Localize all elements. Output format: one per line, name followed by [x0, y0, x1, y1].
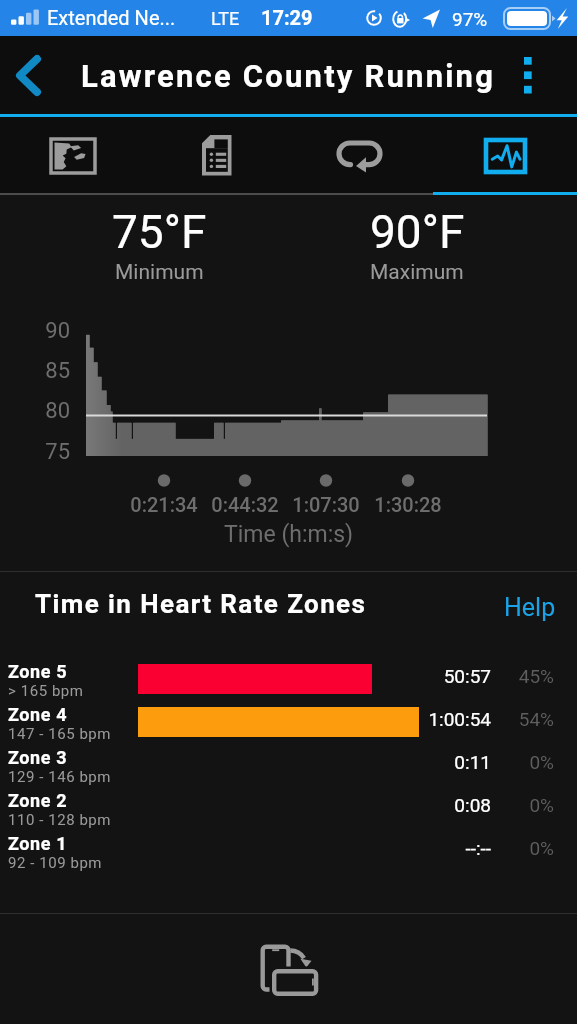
staticText: 129 - 146 bpm: [8, 768, 112, 786]
button[interactable]: Zone 2: [0, 787, 577, 830]
staticText: 0%: [454, 837, 554, 859]
button[interactable]: Help: [494, 586, 566, 628]
button[interactable]: Back: [0, 36, 56, 115]
button[interactable]: Rotate screen: [250, 930, 328, 1008]
staticText: Extended Ne...: [47, 6, 176, 29]
button[interactable]: More options: [500, 36, 556, 115]
staticText: 50:57: [291, 665, 491, 687]
staticText: Maximum: [370, 260, 464, 285]
staticText: 1:30:28: [358, 493, 458, 516]
staticText: Time in Heart Rate Zones: [35, 589, 367, 619]
button[interactable]: Zone 1: [0, 830, 577, 873]
staticText: 0%: [454, 794, 554, 816]
staticText: 75: [20, 439, 70, 465]
staticText: 75°F: [112, 205, 207, 259]
staticText: Zone 1: [8, 833, 68, 854]
staticText: 147 - 165 bpm: [8, 725, 112, 743]
button[interactable]: Zone 4: [0, 701, 577, 744]
staticText: Zone 2: [8, 790, 68, 811]
staticText: 90: [20, 318, 70, 344]
staticText: 0%: [454, 751, 554, 773]
button[interactable]: Charts: [433, 117, 577, 195]
staticText: Zone 5: [8, 661, 68, 682]
staticText: Zone 4: [8, 704, 68, 725]
staticText: LTE: [211, 8, 240, 29]
staticText: 80: [20, 398, 70, 424]
staticText: 1:00:54: [291, 708, 491, 730]
staticText: 45%: [454, 665, 554, 687]
staticText: Help: [504, 593, 556, 622]
button[interactable]: Details: [145, 117, 289, 195]
staticText: Minimum: [115, 260, 204, 285]
staticText: Time (h:m:s): [224, 521, 354, 548]
staticText: 90°F: [370, 205, 465, 259]
staticText: 97%: [452, 8, 488, 30]
button[interactable]: Map: [0, 117, 145, 195]
staticText: 1:07:30: [276, 493, 376, 516]
staticText: 0:11: [291, 751, 491, 773]
staticText: Zone 3: [8, 747, 68, 768]
staticText: > 165 bpm: [8, 682, 84, 700]
staticText: 54%: [454, 708, 554, 730]
button[interactable]: Zone 5: [0, 658, 577, 701]
staticText: --:--: [291, 837, 491, 859]
staticText: 92 - 109 bpm: [8, 854, 103, 872]
staticText: 0:21:34: [114, 493, 214, 516]
staticText: 110 - 128 bpm: [8, 811, 112, 829]
button[interactable]: Laps: [289, 117, 433, 195]
button[interactable]: Zone 3: [0, 744, 577, 787]
staticText: 85: [20, 358, 70, 384]
staticText: 0:44:32: [195, 493, 295, 516]
staticText: 0:08: [291, 794, 491, 816]
staticText: Lawrence County Running: [81, 58, 496, 94]
staticText: 17:29: [261, 6, 313, 29]
